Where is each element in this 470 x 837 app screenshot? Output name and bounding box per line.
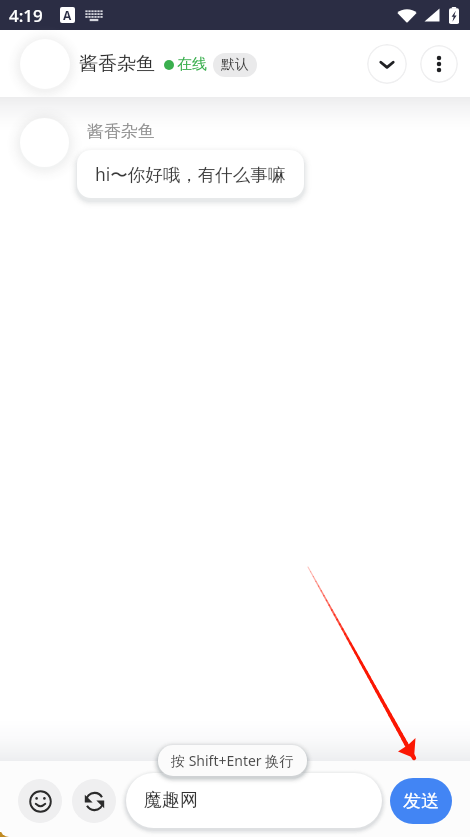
- button[interactable]: More options: [420, 45, 458, 83]
- staticText: 酱香杂鱼: [79, 52, 155, 76]
- staticText: 酱香杂鱼: [87, 121, 155, 142]
- button[interactable]: Collapse: [367, 44, 407, 84]
- staticText: 发送: [403, 790, 439, 813]
- staticText: 4:19: [9, 4, 43, 27]
- staticText: 按 Shift+Enter 换行: [171, 751, 294, 770]
- staticText: hi〜你好哦，有什么事嘛: [95, 162, 286, 186]
- button[interactable]: 发送: [390, 778, 452, 824]
- staticText: 在线: [177, 55, 207, 74]
- button[interactable]: Emoji: [18, 779, 62, 823]
- staticText: 魔趣网: [144, 789, 198, 812]
- button[interactable]: 魔趣网: [126, 773, 382, 828]
- staticText: A: [63, 7, 72, 23]
- staticText: 默认: [221, 56, 249, 74]
- button[interactable]: Refresh: [72, 779, 116, 823]
